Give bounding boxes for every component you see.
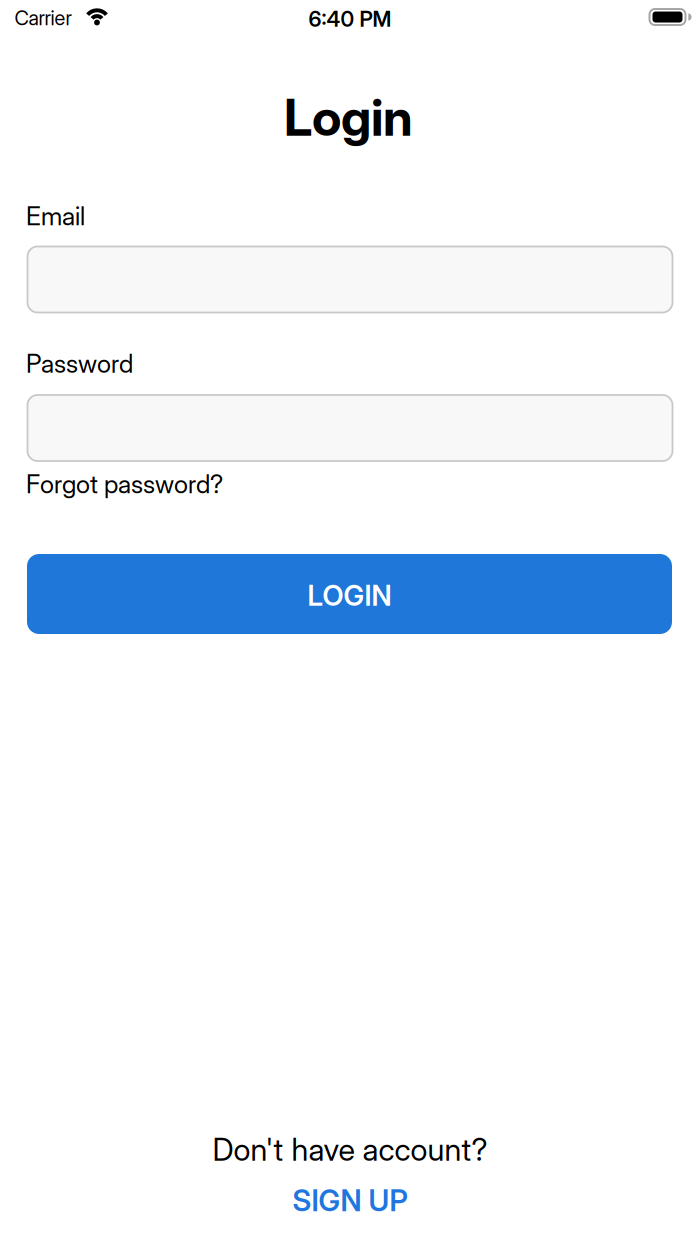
staticText: Email xyxy=(26,201,85,231)
staticText: Login xyxy=(284,87,413,147)
button[interactable] xyxy=(27,395,672,461)
button[interactable]: LOGIN xyxy=(27,554,672,634)
staticText: Password xyxy=(26,349,133,378)
staticText: Carrier xyxy=(14,6,71,30)
staticText: 6:40 PM xyxy=(308,6,391,32)
staticText: LOGIN xyxy=(307,579,391,612)
button[interactable]: Forgot password? xyxy=(26,469,223,499)
staticText: Forgot password? xyxy=(26,469,223,499)
staticText: Don't have account? xyxy=(212,1131,487,1168)
staticText: SIGN UP xyxy=(292,1183,407,1218)
button[interactable]: SIGN UP xyxy=(292,1183,407,1218)
button[interactable] xyxy=(27,246,672,312)
